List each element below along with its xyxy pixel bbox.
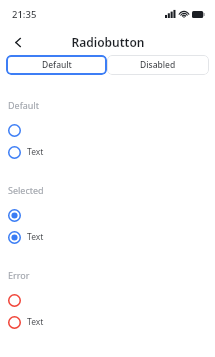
button[interactable]: Text: [0, 145, 215, 159]
staticText: Text: [27, 316, 44, 328]
button[interactable]: Disabled: [107, 55, 209, 75]
button[interactable]: Back: [6, 30, 30, 54]
button[interactable]: Radio button: [0, 208, 215, 222]
button[interactable]: Text: [0, 230, 215, 244]
staticText: Error: [8, 269, 30, 281]
staticText: Text: [27, 146, 44, 158]
staticText: Default: [42, 59, 72, 71]
button[interactable]: Default: [6, 55, 107, 75]
other: Radio button: [8, 124, 21, 137]
staticText: 21:35: [12, 8, 37, 21]
button[interactable]: Text: [0, 315, 215, 329]
other: Radio button: [8, 209, 21, 222]
staticText: Default: [8, 99, 39, 111]
staticText: Selected: [8, 184, 44, 196]
staticText: Text: [27, 231, 44, 243]
button[interactable]: Radio button: [0, 123, 215, 137]
staticText: Disabled: [140, 59, 176, 71]
staticText: Radiobutton: [71, 34, 145, 50]
button[interactable]: Radio button: [0, 293, 215, 307]
other: Radio button: [8, 294, 21, 307]
